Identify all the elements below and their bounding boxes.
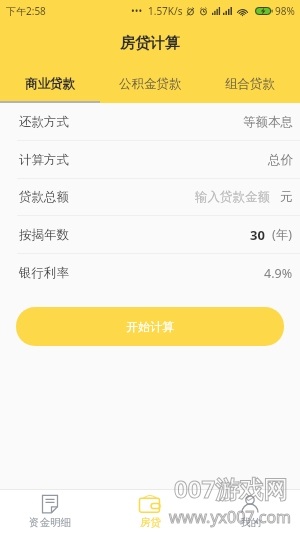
staticText: 总价: [268, 152, 293, 168]
staticText: 公积金贷款: [119, 76, 182, 92]
staticText: 等额本息: [243, 114, 293, 130]
staticText: 房贷计算: [120, 34, 180, 53]
staticText: 元: [280, 189, 293, 205]
button[interactable]: 计算方式: [0, 141, 300, 178]
button[interactable]: 贷款总额: [0, 179, 300, 215]
staticText: 按揭年数: [19, 227, 69, 243]
button[interactable]: 公积金贷款: [100, 65, 200, 103]
staticText: 98%: [275, 4, 295, 18]
staticText: www.yx007.com: [169, 506, 292, 528]
staticText: 1.57K/s: [148, 4, 183, 18]
button[interactable]: 还款方式: [0, 103, 300, 140]
staticText: 007游戏网: [174, 472, 288, 505]
staticText: (年): [272, 226, 293, 243]
button[interactable]: 房贷: [100, 490, 200, 533]
button[interactable]: 资金明细: [0, 490, 100, 533]
staticText: 资金明细: [29, 516, 71, 529]
button[interactable]: 按揭年数: [0, 216, 300, 253]
button[interactable]: 开始计算: [16, 307, 284, 346]
button[interactable]: 银行利率: [0, 254, 300, 292]
staticText: 开始计算: [126, 319, 174, 334]
staticText: •••: [131, 4, 143, 18]
staticText: 银行利率: [19, 265, 69, 281]
staticText: 我的: [240, 516, 261, 529]
staticText: 4.9%: [264, 265, 293, 282]
button[interactable]: 我的: [200, 490, 300, 533]
staticText: 房贷: [140, 516, 161, 529]
staticText: 商业贷款: [25, 76, 75, 92]
staticText: 还款方式: [19, 114, 69, 130]
staticText: 输入贷款金额: [195, 189, 270, 205]
staticText: 30: [250, 226, 265, 244]
button[interactable]: 商业贷款: [0, 65, 100, 103]
button[interactable]: 组合贷款: [200, 65, 300, 103]
staticText: 计算方式: [19, 152, 69, 168]
staticText: 下午2:58: [6, 4, 46, 18]
staticText: 组合贷款: [225, 76, 275, 92]
staticText: 贷款总额: [19, 189, 69, 205]
